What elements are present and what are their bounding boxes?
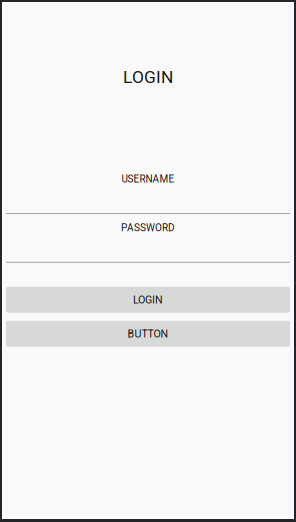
button[interactable]: BUTTON (6, 321, 290, 347)
staticText: LOGIN (123, 67, 173, 87)
button[interactable]: USERNAME (3, 173, 293, 214)
button[interactable]: PASSWORD (3, 214, 293, 263)
staticText: PASSWORD (121, 222, 175, 234)
staticText: USERNAME (121, 173, 174, 185)
staticText: LOGIN (133, 293, 163, 306)
button[interactable]: LOGIN (6, 287, 290, 313)
staticText: BUTTON (127, 327, 168, 340)
